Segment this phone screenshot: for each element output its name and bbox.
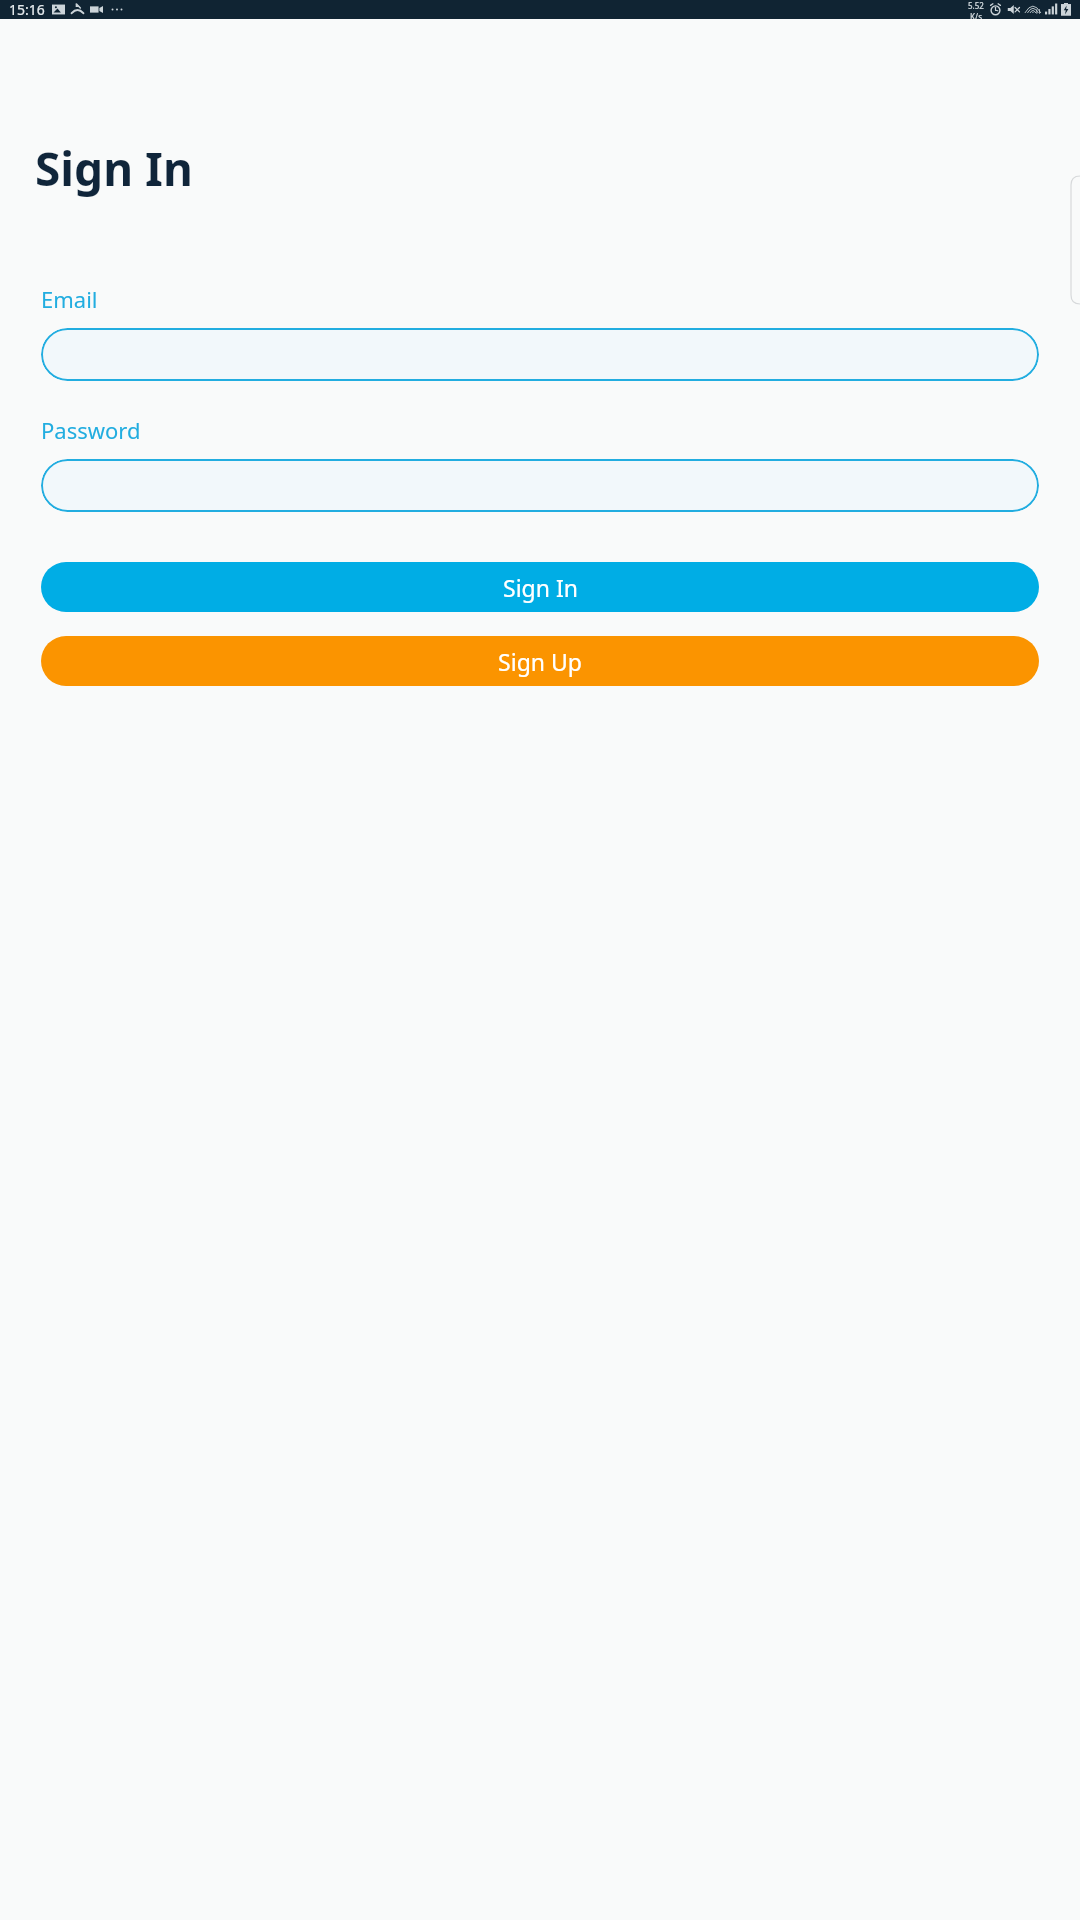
button[interactable] (41, 328, 1039, 381)
staticText: 15:16 (9, 0, 45, 19)
staticText: K/s (970, 11, 983, 19)
staticText: Sign Up (498, 646, 582, 677)
staticText: Email (41, 284, 98, 314)
button[interactable] (41, 459, 1039, 512)
staticText: Sign In (503, 572, 578, 603)
staticText: Sign In (35, 137, 193, 200)
staticText: Password (41, 415, 141, 445)
staticText: 5.52 (968, 0, 984, 11)
button[interactable]: Sign In (41, 562, 1039, 612)
button[interactable]: Sign Up (41, 636, 1039, 686)
